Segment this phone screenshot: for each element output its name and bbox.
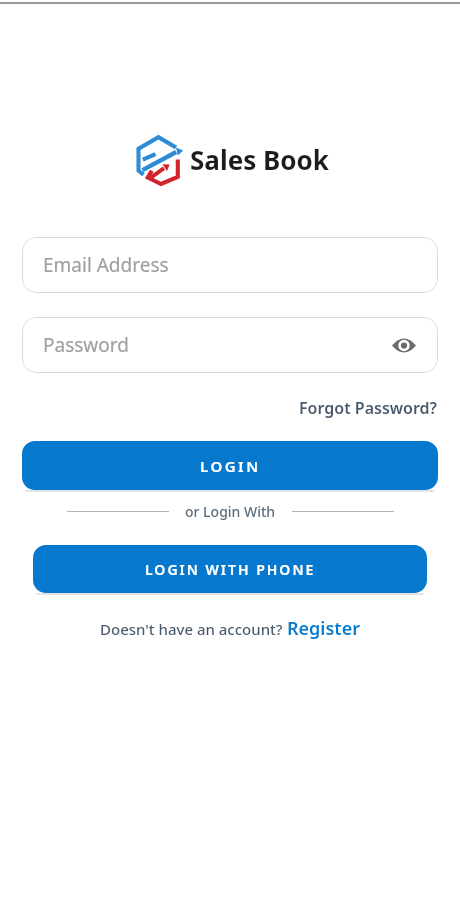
button[interactable]: Register <box>287 616 360 641</box>
button[interactable]: Password <box>22 317 438 373</box>
staticText: Sales Book <box>190 142 329 177</box>
button[interactable]: Email Address <box>22 237 438 293</box>
staticText: LOGIN WITH PHONE <box>145 560 316 579</box>
button[interactable]: Forgot Password? <box>299 397 437 419</box>
staticText: Email Address <box>43 252 169 278</box>
button[interactable] <box>392 337 416 354</box>
button[interactable]: LOGIN <box>22 441 438 490</box>
staticText: or Login With <box>185 502 276 521</box>
button[interactable]: LOGIN WITH PHONE <box>33 545 427 593</box>
staticText: Password <box>43 332 129 358</box>
staticText: Doesn't have an account? <box>100 619 287 639</box>
staticText: LOGIN <box>200 456 261 476</box>
